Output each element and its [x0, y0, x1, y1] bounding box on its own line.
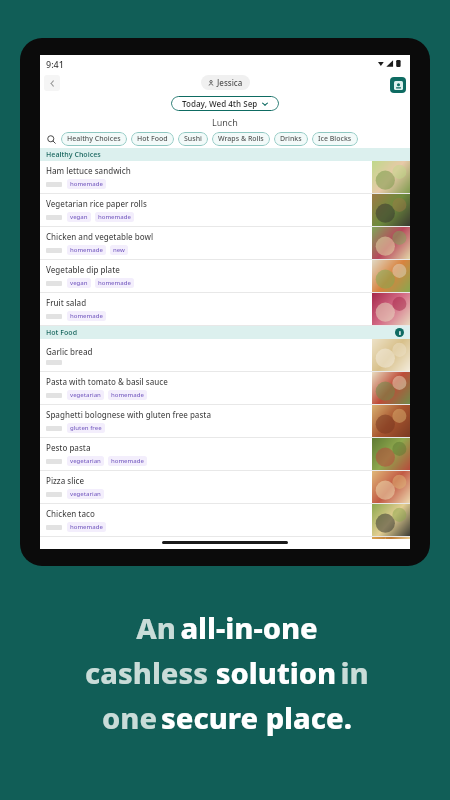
- button[interactable]: Search: [45, 133, 58, 146]
- staticText: one: [98, 698, 161, 737]
- staticText: vegetarian: [70, 490, 101, 498]
- staticText: gluten free: [70, 424, 102, 432]
- staticText: Vegetarian rice paper rolls: [46, 198, 147, 209]
- staticText: Today, Wed 4th Sep: [182, 98, 258, 109]
- staticText: vegan: [70, 213, 88, 221]
- staticText: Hot Food: [46, 328, 78, 338]
- staticText: An: [132, 608, 180, 647]
- staticText: Vegetable dip plate: [46, 264, 120, 275]
- button[interactable]: Ice Blocks: [312, 132, 358, 146]
- button[interactable]: Vegetable dip plate: [40, 260, 410, 293]
- staticText: homemade: [111, 457, 144, 465]
- button[interactable]: Hot Food: [131, 132, 174, 146]
- staticText: new: [113, 246, 125, 254]
- staticText: in: [340, 653, 369, 692]
- button[interactable]: Pizza slice: [40, 471, 410, 504]
- staticText: Sushi: [184, 134, 202, 144]
- staticText: vegetarian: [70, 457, 101, 465]
- staticText: homemade: [98, 279, 131, 287]
- staticText: solution: [212, 653, 340, 692]
- staticText: Pasta with tomato & basil sauce: [46, 376, 168, 387]
- staticText: Lunch: [212, 116, 238, 128]
- staticText: homemade: [70, 246, 103, 254]
- staticText: Ham lettuce sandwich: [46, 165, 131, 176]
- button[interactable]: Chicken taco: [40, 504, 410, 537]
- staticText: Healthy Choices: [67, 134, 121, 144]
- staticText: homemade: [70, 180, 103, 188]
- staticText: Hot Food: [137, 134, 168, 144]
- staticText: homemade: [70, 312, 103, 320]
- staticText: vegetarian: [70, 391, 101, 399]
- button[interactable]: Ham lettuce sandwich: [40, 161, 410, 194]
- button[interactable]: My card: [390, 77, 406, 93]
- staticText: homemade: [111, 391, 144, 399]
- staticText: Garlic bread: [46, 346, 93, 357]
- staticText: Wraps & Rolls: [218, 134, 264, 144]
- button[interactable]: Jessica: [201, 75, 250, 90]
- staticText: Healthy Choices: [46, 150, 101, 160]
- button[interactable]: Drinks: [274, 132, 308, 146]
- button[interactable]: Lean beef sausage roll: [40, 537, 410, 539]
- staticText: Drinks: [280, 134, 302, 144]
- button[interactable]: Fruit salad: [40, 293, 410, 326]
- staticText: vegan: [70, 279, 88, 287]
- staticText: Spaghetti bolognese with gluten free pas…: [46, 409, 211, 420]
- staticText: secure place.: [161, 698, 352, 737]
- button[interactable]: Back: [44, 75, 60, 91]
- staticText: cashless: [81, 653, 212, 692]
- staticText: i: [399, 329, 401, 337]
- staticText: Ice Blocks: [318, 134, 352, 144]
- staticText: Fruit salad: [46, 297, 87, 308]
- staticText: Pesto pasta: [46, 442, 91, 453]
- button[interactable]: Wraps & Rolls: [212, 132, 270, 146]
- staticText: all-in-one: [180, 608, 318, 647]
- button[interactable]: Vegetarian rice paper rolls: [40, 194, 410, 227]
- button[interactable]: Today, Wed 4th Sep: [171, 96, 279, 111]
- staticText: Chicken taco: [46, 508, 95, 519]
- staticText: Jessica: [217, 77, 243, 88]
- button[interactable]: Sushi: [178, 132, 208, 146]
- staticText: Chicken and vegetable bowl: [46, 231, 154, 242]
- button[interactable]: Pesto pasta: [40, 438, 410, 471]
- button[interactable]: Pasta with tomato & basil sauce: [40, 372, 410, 405]
- staticText: homemade: [98, 213, 131, 221]
- staticText: 9:41: [46, 58, 64, 70]
- staticText: Pizza slice: [46, 475, 85, 486]
- button[interactable]: Information: [395, 328, 404, 337]
- button[interactable]: Healthy Choices: [61, 132, 127, 146]
- button[interactable]: Garlic bread: [40, 339, 410, 372]
- staticText: homemade: [70, 523, 103, 531]
- button[interactable]: Spaghetti bolognese with gluten free pas…: [40, 405, 410, 438]
- button[interactable]: Chicken and vegetable bowl: [40, 227, 410, 260]
